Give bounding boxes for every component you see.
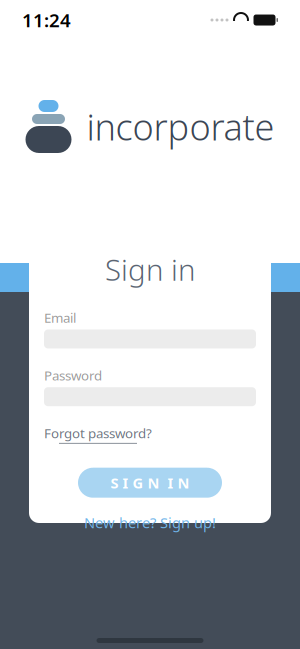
staticText: Forgot password?	[44, 424, 152, 442]
staticText: incorporate	[86, 103, 274, 150]
staticText: Email	[44, 309, 76, 326]
staticText: 11:24	[22, 8, 71, 32]
button[interactable]: S I G N I N	[78, 468, 222, 498]
staticText: New here? Sign up!	[84, 513, 216, 532]
staticText: S I G N I N	[110, 473, 189, 492]
staticText: Password	[44, 366, 102, 384]
staticText: Sign in	[105, 250, 195, 289]
button[interactable]: New here? Sign up!	[84, 513, 216, 532]
button[interactable]: Forgot password?	[44, 424, 152, 444]
